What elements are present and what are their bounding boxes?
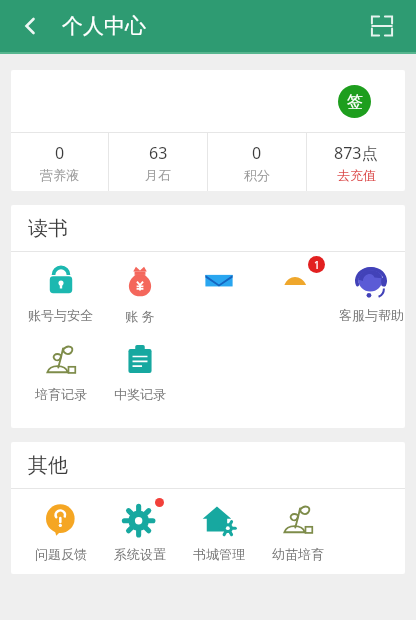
staticText: 账号与安全 <box>28 307 93 323</box>
button[interactable]: Item <box>258 258 337 325</box>
button[interactable]: 客服与帮助 <box>337 258 405 323</box>
staticText: 系统设置 <box>114 546 166 562</box>
staticText: 月石 <box>145 167 171 183</box>
staticText: 积分 <box>244 167 270 183</box>
staticText: 幼苗培育 <box>272 546 324 562</box>
staticText: 营养液 <box>40 167 79 183</box>
button[interactable]: 问题反馈 <box>21 497 100 562</box>
staticText: 书城管理 <box>193 546 245 562</box>
staticText: 873点 <box>334 142 378 164</box>
staticText: 中奖记录 <box>114 386 166 402</box>
button[interactable]: Item <box>179 258 258 325</box>
staticText: 问题反馈 <box>35 546 87 562</box>
staticText: 个人中心 <box>62 13 146 39</box>
button[interactable]: 培育记录 <box>21 337 100 402</box>
staticText: 培育记录 <box>35 386 87 402</box>
button[interactable]: 0 <box>208 133 306 191</box>
button[interactable]: 873点 <box>307 133 405 191</box>
button[interactable]: 中奖记录 <box>100 337 179 402</box>
button[interactable]: Scan <box>362 6 402 46</box>
staticText: 0 <box>252 142 262 164</box>
button[interactable]: 账号与安全 <box>21 258 100 323</box>
staticText: 其他 <box>28 453 68 478</box>
button[interactable]: 系统设置 <box>100 497 179 562</box>
button[interactable]: 63 <box>109 133 207 191</box>
button[interactable]: 0 <box>11 133 108 191</box>
staticText: 63 <box>149 142 168 164</box>
staticText: 账 务 <box>125 307 155 325</box>
button[interactable]: 幼苗培育 <box>258 497 337 562</box>
button[interactable]: Back <box>8 4 52 48</box>
staticText: 1 <box>314 258 320 272</box>
staticText: 客服与帮助 <box>339 307 404 323</box>
button[interactable]: 签 <box>338 85 371 118</box>
button[interactable]: 账 务 <box>100 258 179 325</box>
staticText: 去充值 <box>337 167 376 183</box>
staticText: 0 <box>55 142 65 164</box>
staticText: 签 <box>347 92 363 112</box>
button[interactable]: 书城管理 <box>179 497 258 562</box>
staticText: 读书 <box>28 216 68 241</box>
